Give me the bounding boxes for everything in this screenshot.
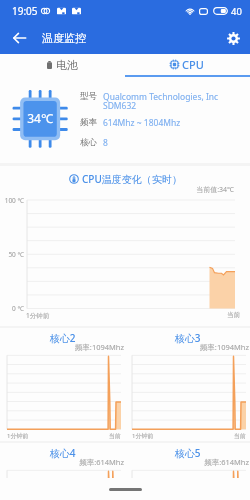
button[interactable]: 电池 bbox=[0, 54, 125, 75]
staticText: 8 bbox=[103, 137, 229, 149]
staticText: 核心3 bbox=[125, 331, 250, 345]
staticText: 1分钟前 bbox=[26, 311, 50, 320]
staticText: 34℃ bbox=[23, 110, 57, 126]
staticText: 0 ℃ bbox=[0, 304, 24, 313]
button[interactable]: Settings bbox=[221, 26, 245, 50]
staticText: 1分钟前 bbox=[7, 432, 29, 440]
staticText: 核心2 bbox=[0, 331, 125, 345]
button[interactable]: CPU bbox=[125, 54, 250, 75]
staticText: 频率:614Mhz bbox=[125, 457, 249, 467]
staticText: Qualcomm Technologies, Inc SDM632 bbox=[103, 91, 229, 112]
staticText: 当前 bbox=[0, 311, 240, 319]
staticText: 40 bbox=[231, 5, 242, 18]
staticText: 核心4 bbox=[0, 446, 125, 460]
staticText: 19:05 bbox=[12, 4, 38, 18]
staticText: 核心 bbox=[80, 137, 97, 148]
staticText: 当前 bbox=[0, 432, 121, 440]
staticText: 频率 bbox=[80, 117, 97, 128]
staticText: CPU温度变化（实时） bbox=[82, 172, 182, 186]
staticText: 当前值:34℃ bbox=[0, 185, 234, 195]
staticText: 频率:1094Mhz bbox=[125, 342, 249, 352]
staticText: CPU bbox=[182, 57, 204, 72]
staticText: 50 ℃ bbox=[0, 250, 24, 259]
staticText: 当前 bbox=[125, 432, 246, 440]
staticText: 频率:1094Mhz bbox=[0, 342, 124, 352]
staticText: 型号 bbox=[80, 91, 97, 102]
staticText: 614Mhz ~ 1804Mhz bbox=[103, 117, 229, 129]
button[interactable]: Back bbox=[7, 26, 31, 50]
staticText: 100 ℃ bbox=[0, 196, 24, 205]
staticText: 1分钟前 bbox=[132, 432, 154, 440]
staticText: 电池 bbox=[56, 58, 78, 72]
staticText: 核心5 bbox=[125, 446, 250, 460]
staticText: 频率:614Mhz bbox=[0, 457, 124, 467]
staticText: 温度监控 bbox=[42, 31, 86, 45]
